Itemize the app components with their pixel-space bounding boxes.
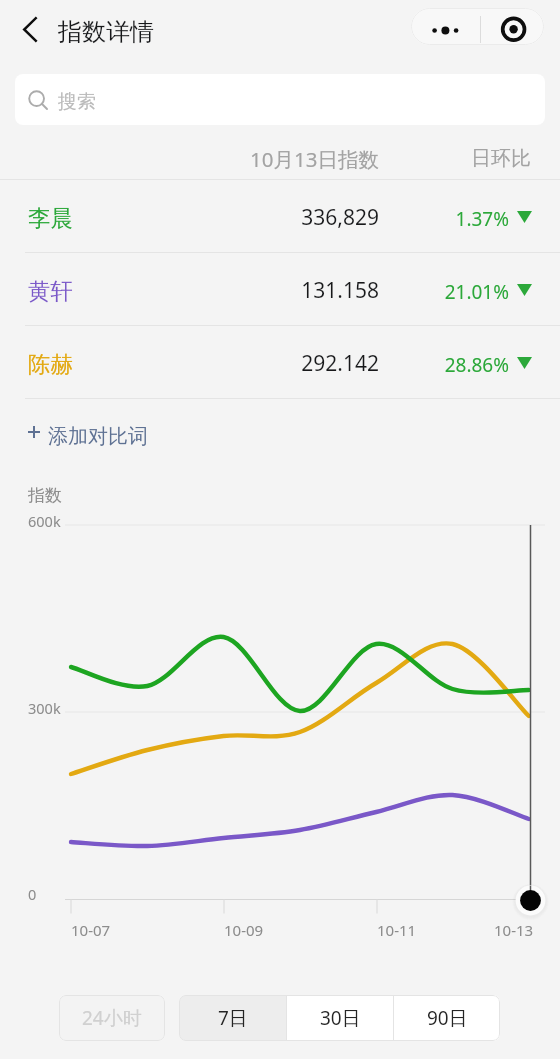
button[interactable]: 添加对比词: [20, 413, 160, 453]
button[interactable]: 搜索: [15, 74, 545, 125]
button[interactable]: More options: [411, 8, 480, 45]
button[interactable]: 李晨: [0, 180, 560, 253]
staticText: 10-13: [494, 920, 534, 940]
button[interactable]: 90日: [394, 995, 500, 1041]
staticText: 黄轩: [28, 277, 73, 305]
button[interactable]: 陈赫: [0, 326, 560, 399]
staticText: 10-11: [377, 920, 417, 940]
staticText: 600k: [28, 511, 61, 531]
staticText: 陈赫: [28, 350, 73, 378]
staticText: 7日: [218, 1005, 248, 1031]
staticText: 添加对比词: [48, 424, 148, 449]
button[interactable]: Close mini program: [481, 8, 544, 45]
staticText: 搜索: [58, 90, 96, 114]
staticText: 指数详情: [58, 17, 154, 47]
button[interactable]: Back: [9, 8, 51, 50]
staticText: 10-07: [71, 920, 111, 940]
staticText: 日环比: [471, 146, 531, 171]
button[interactable]: 24小时: [59, 995, 165, 1041]
staticText: 1.37%: [399, 206, 509, 232]
staticText: 10月13日指数: [250, 145, 379, 173]
staticText: 10-09: [224, 920, 264, 940]
staticText: 90日: [427, 1005, 468, 1031]
staticText: 李晨: [28, 204, 73, 232]
staticText: 21.01%: [399, 279, 509, 305]
button[interactable]: 7日: [179, 995, 286, 1041]
staticText: 0: [28, 884, 37, 904]
staticText: 292.142: [229, 349, 379, 378]
staticText: 28.86%: [399, 352, 509, 378]
staticText: 30日: [320, 1005, 361, 1031]
button[interactable]: 30日: [287, 995, 393, 1041]
staticText: 131.158: [229, 276, 379, 305]
staticText: 24小时: [82, 1005, 142, 1031]
staticText: 336,829: [229, 203, 379, 232]
button[interactable]: 黄轩: [0, 253, 560, 326]
staticText: 300k: [28, 698, 61, 718]
staticText: 指数: [28, 485, 62, 506]
